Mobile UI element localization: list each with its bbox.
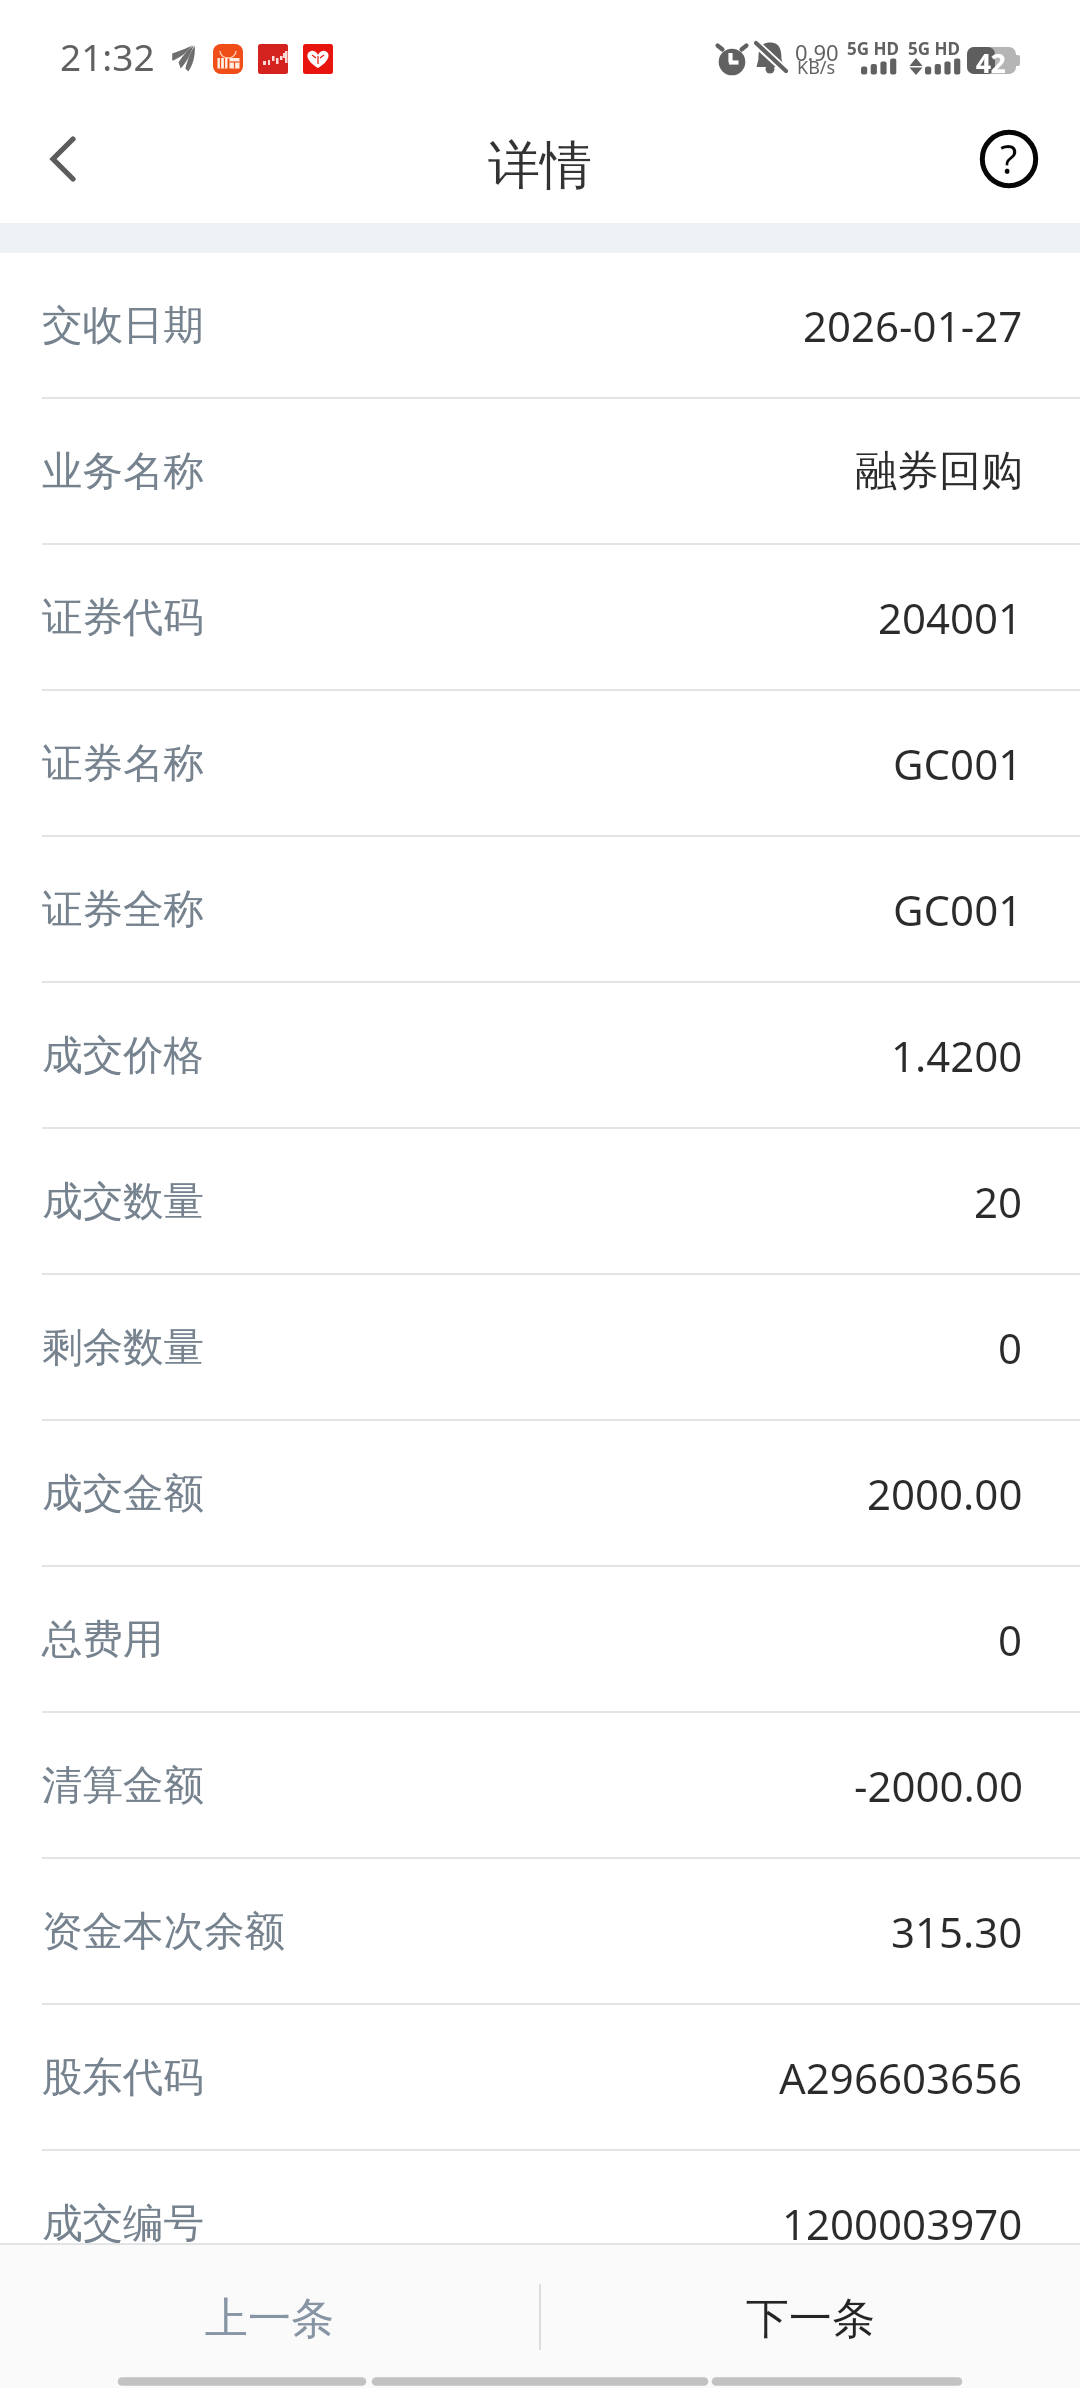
button[interactable]: 股东代码 [0, 2005, 1080, 2149]
staticText: 5G HD [908, 37, 960, 60]
button[interactable]: 成交数量 [0, 1129, 1080, 1273]
staticText: 融券回购 [855, 445, 1023, 498]
staticText: 成交价格 [42, 1030, 204, 1081]
staticText: 21:32 [60, 31, 155, 81]
button[interactable]: 业务名称 [0, 399, 1080, 543]
button[interactable]: 证券名称 [0, 691, 1080, 835]
button[interactable]: 总费用 [0, 1567, 1080, 1711]
staticText: 股东代码 [42, 2052, 204, 2103]
staticText: 2000.00 [867, 1465, 1023, 1522]
staticText: A296603656 [779, 2049, 1023, 2106]
button[interactable]: Help [964, 110, 1054, 208]
staticText: 成交金额 [42, 1468, 204, 1519]
staticText: 0 [998, 1611, 1023, 1668]
staticText: 交收日期 [42, 300, 204, 351]
button[interactable]: 资金本次余额 [0, 1859, 1080, 2003]
button[interactable]: 上一条 [0, 2245, 539, 2388]
staticText: 42 [976, 45, 1006, 80]
staticText: 0 [998, 1319, 1023, 1376]
staticText: 成交编号 [42, 2198, 204, 2249]
button[interactable]: 交收日期 [0, 253, 1080, 397]
button[interactable]: 剩余数量 [0, 1275, 1080, 1419]
staticText: 证券代码 [42, 592, 204, 643]
staticText: 证券全称 [42, 884, 204, 935]
staticText: KB/s [797, 55, 836, 80]
button[interactable]: 成交价格 [0, 983, 1080, 1127]
staticText: GC001 [893, 881, 1023, 938]
button[interactable]: 清算金额 [0, 1713, 1080, 1857]
staticText: 资金本次余额 [42, 1906, 285, 1957]
staticText: 1200003970 [782, 2195, 1023, 2252]
staticText: 0.90 [795, 37, 839, 67]
staticText: -2000.00 [854, 1757, 1023, 1814]
staticText: 5G HD [847, 37, 899, 60]
staticText: 业务名称 [42, 446, 204, 497]
button[interactable]: 证券代码 [0, 545, 1080, 689]
staticText: 证券名称 [42, 738, 204, 789]
staticText: 1.4200 [891, 1027, 1023, 1084]
staticText: 详情 [488, 133, 592, 199]
button[interactable]: 证券全称 [0, 837, 1080, 981]
staticText: 上一条 [205, 2292, 334, 2346]
staticText: 成交数量 [42, 1176, 204, 1227]
staticText: 剩余数量 [42, 1322, 204, 1373]
staticText: 204001 [878, 589, 1023, 646]
staticText: 315.30 [891, 1903, 1023, 1960]
staticText: GC001 [893, 735, 1023, 792]
staticText: 20 [974, 1173, 1023, 1230]
button[interactable]: 成交金额 [0, 1421, 1080, 1565]
staticText: ? [1000, 131, 1018, 185]
button[interactable]: 成交编号 [0, 2151, 1080, 2295]
staticText: 下一条 [746, 2292, 875, 2346]
button[interactable]: Back [14, 110, 112, 208]
button[interactable]: 下一条 [541, 2245, 1080, 2388]
staticText: 清算金额 [42, 1760, 204, 1811]
staticText: 总费用 [42, 1614, 164, 1665]
staticText: 2026-01-27 [803, 297, 1023, 354]
